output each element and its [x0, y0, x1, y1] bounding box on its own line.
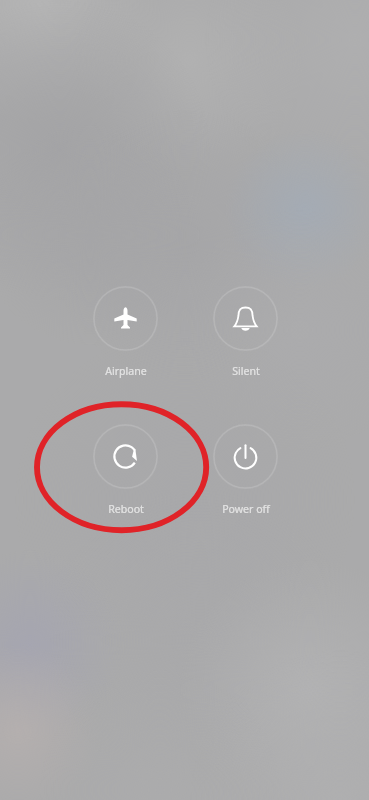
staticText: Silent: [232, 364, 260, 378]
button[interactable]: Reboot: [77, 420, 173, 525]
button[interactable]: Power off: [197, 420, 293, 525]
staticText: Power off: [222, 502, 270, 516]
button[interactable]: Silent: [197, 282, 293, 387]
button[interactable]: Airplane: [77, 282, 173, 387]
staticText: Reboot: [108, 502, 144, 516]
other: Airplane: [93, 286, 158, 351]
other: Silent: [213, 286, 278, 351]
other: Reboot: [93, 424, 158, 489]
other: Power off: [213, 424, 278, 489]
staticText: Airplane: [105, 364, 147, 378]
